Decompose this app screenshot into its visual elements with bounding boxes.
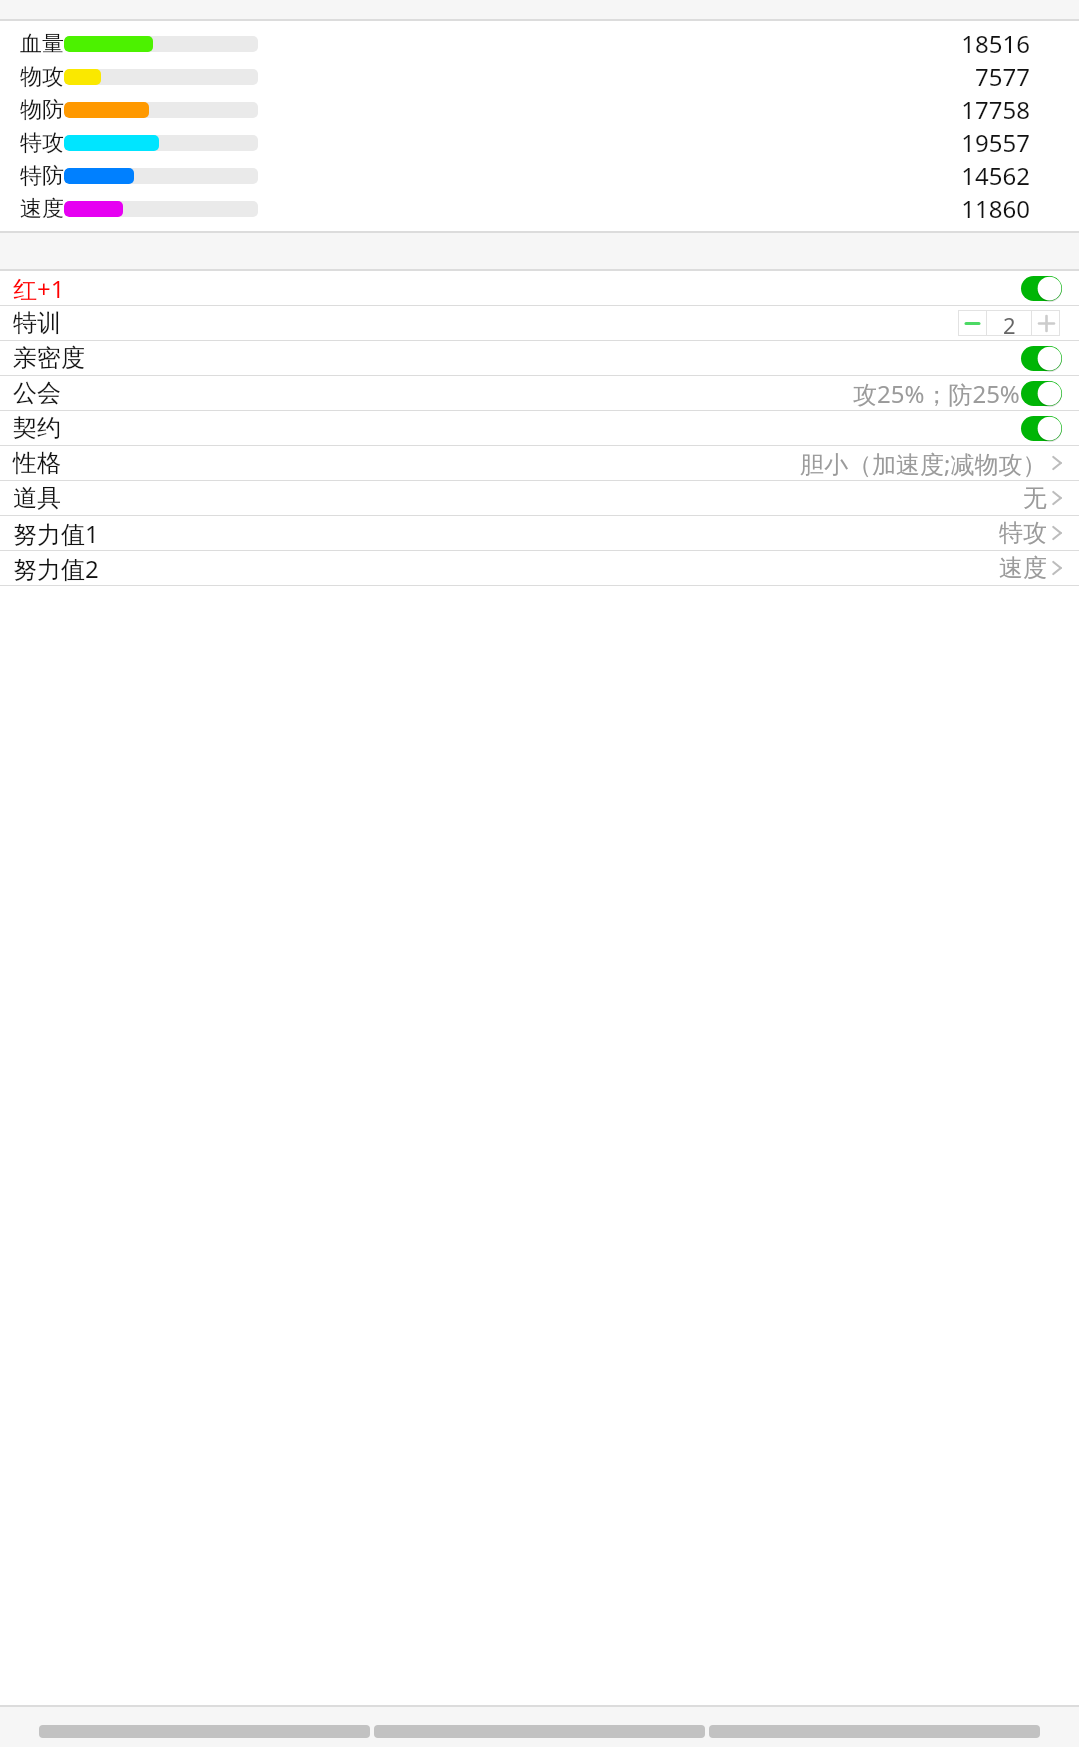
button[interactable]: 契约	[0, 411, 1079, 445]
button[interactable]: 努力值2	[0, 551, 1079, 585]
button[interactable]: 亲密度	[0, 341, 1079, 375]
button[interactable]: 特防	[0, 159, 1079, 192]
staticText: 道具	[13, 483, 61, 513]
button[interactable]: 特攻	[0, 126, 1079, 159]
button[interactable]: Toggle	[1021, 346, 1062, 371]
staticText: 7577	[975, 60, 1030, 93]
staticText: 特防	[20, 162, 64, 190]
staticText: 契约	[13, 413, 61, 443]
button[interactable]: 道具	[0, 481, 1079, 515]
staticText: 速度	[999, 553, 1047, 583]
staticText: 胆小（加速度;减物攻）	[800, 447, 1047, 480]
button[interactable]: Toggle	[1021, 276, 1062, 301]
staticText: 红+1	[13, 272, 65, 305]
staticText: 努力值1	[13, 517, 99, 550]
staticText: 努力值2	[13, 552, 99, 585]
staticText: 公会	[13, 378, 61, 408]
staticText: 速度	[20, 195, 64, 223]
staticText: 亲密度	[13, 343, 85, 373]
staticText: 物防	[20, 96, 64, 124]
staticText: 物攻	[20, 63, 64, 91]
button[interactable]: 物攻	[0, 60, 1079, 93]
staticText: 攻25%；防25%	[853, 377, 1020, 410]
staticText: 无	[1023, 483, 1047, 513]
staticText: 18516	[961, 27, 1030, 60]
button[interactable]: 努力值1	[0, 516, 1079, 550]
button[interactable]: 血量	[0, 27, 1079, 60]
button[interactable]: 公会	[0, 376, 1079, 410]
button[interactable]: Decrease	[958, 310, 986, 336]
staticText: 特攻	[20, 129, 64, 157]
button[interactable]: 性格	[0, 446, 1079, 480]
staticText: 性格	[13, 448, 61, 478]
staticText: 血量	[20, 30, 64, 58]
button[interactable]: Toggle	[1021, 416, 1062, 441]
staticText: 19557	[961, 126, 1030, 159]
staticText: 11860	[961, 192, 1030, 225]
staticText: 2	[1003, 310, 1016, 336]
staticText: 特攻	[999, 518, 1047, 548]
staticText: 特训	[13, 308, 61, 338]
button[interactable]: 速度	[0, 192, 1079, 225]
button[interactable]: Increase	[1032, 310, 1060, 336]
button[interactable]: Toggle	[1021, 381, 1062, 406]
button[interactable]: 红+1	[0, 271, 1079, 305]
button[interactable]: 特训	[0, 306, 1079, 340]
button[interactable]: 物防	[0, 93, 1079, 126]
staticText: 14562	[961, 159, 1030, 192]
staticText: 17758	[961, 93, 1030, 126]
